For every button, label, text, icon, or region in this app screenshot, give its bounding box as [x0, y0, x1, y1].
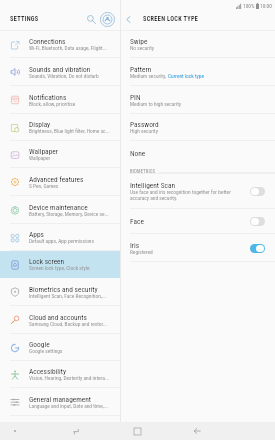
button[interactable]: Back	[183, 422, 211, 440]
staticText: PIN	[130, 93, 141, 102]
staticText: Device maintenance	[29, 203, 88, 212]
staticText: Language and input, Date and time,...	[29, 403, 109, 409]
staticText: Face	[130, 217, 144, 226]
button[interactable]: General management	[0, 388, 120, 416]
staticText: Accessibility	[29, 367, 66, 376]
staticText: Intelligent Scan	[130, 181, 176, 190]
button[interactable]: Menu	[1, 422, 29, 440]
staticText: Display	[29, 120, 51, 129]
button[interactable]: Pattern	[121, 58, 275, 86]
staticText: Battery, Storage, Memory, Device se...	[29, 211, 109, 217]
staticText: SETTINGS	[10, 15, 39, 22]
staticText: Wi-Fi, Bluetooth, Data usage, Flight...	[29, 45, 107, 51]
button[interactable]: PIN	[121, 86, 275, 114]
staticText: Notifications	[29, 93, 67, 102]
button[interactable]: Google	[0, 334, 120, 361]
staticText: Medium to high security	[130, 101, 182, 107]
staticText: Google settings	[29, 348, 63, 354]
button[interactable]: None	[121, 141, 275, 174]
button[interactable]: Home	[123, 422, 151, 440]
staticText: General management	[29, 395, 92, 404]
button[interactable]: Search	[84, 12, 98, 26]
staticText: Samsung Cloud, Backup and restor...	[29, 321, 108, 327]
button[interactable]: Account	[98, 10, 116, 28]
staticText: Pattern	[130, 65, 152, 74]
staticText: Google	[29, 340, 50, 349]
staticText: SCREEN LOCK TYPE	[143, 15, 199, 22]
staticText: None	[130, 149, 146, 158]
button[interactable]: Biometrics and security	[0, 278, 120, 306]
staticText: 10:00	[260, 3, 272, 9]
staticText: Default apps, App permissions	[29, 238, 94, 244]
staticText: Connections	[29, 37, 66, 46]
staticText: Advanced features	[29, 175, 84, 184]
staticText: Biometrics and security	[29, 285, 98, 294]
staticText: Lock screen	[29, 257, 65, 266]
staticText: BIOMETRICS	[130, 169, 156, 174]
staticText: S Pen, Games	[29, 183, 59, 189]
staticText: Iris	[130, 241, 140, 250]
button[interactable]: Wallpaper	[0, 141, 120, 168]
staticText: Password	[130, 120, 159, 129]
button[interactable]: Swipe	[121, 31, 275, 58]
staticText: Swipe	[130, 37, 148, 46]
button[interactable]: Display	[0, 114, 120, 141]
button[interactable]: Apps	[0, 224, 120, 251]
staticText: 100%	[243, 3, 255, 9]
staticText: Brightness, Blue light filter, Home sc..…	[29, 128, 110, 134]
staticText: Medium security,	[130, 73, 168, 79]
staticText: Block, allow, prioritise	[29, 101, 76, 107]
staticText: High security	[130, 128, 158, 134]
staticText: Wallpaper	[29, 147, 58, 156]
button[interactable]: Sounds and vibration	[0, 58, 120, 86]
staticText: Apps	[29, 230, 44, 239]
button[interactable]: Iris	[121, 234, 275, 262]
button[interactable]: Password	[121, 114, 275, 141]
button[interactable]: Recent apps	[62, 422, 90, 440]
button[interactable]: Lock screen	[0, 251, 120, 278]
button[interactable]: Connections	[0, 31, 120, 58]
staticText: Intelligent Scan, Face Recognition,...	[29, 293, 107, 299]
button[interactable]: Face	[121, 209, 275, 234]
staticText: Sounds, Vibration, Do not disturb	[29, 73, 99, 79]
button[interactable]: Device maintenance	[0, 196, 120, 224]
staticText: Sounds and vibration	[29, 65, 91, 74]
staticText: No security	[130, 45, 155, 51]
button[interactable]: Accessibility	[0, 361, 120, 388]
button[interactable]: Intelligent Scan	[121, 174, 275, 209]
staticText: Registered	[130, 249, 153, 255]
button[interactable]: Advanced features	[0, 168, 120, 196]
button[interactable]: Back	[121, 12, 135, 26]
staticText: Cloud and accounts	[29, 313, 87, 322]
staticText: Use face and iris recognition together f…	[130, 189, 231, 201]
staticText: Screen lock type, Clock style	[29, 265, 90, 271]
staticText: Wallpaper	[29, 155, 51, 161]
staticText: Vision, Hearing, Dexterity and intera...	[29, 375, 109, 381]
button[interactable]: Notifications	[0, 86, 120, 114]
button[interactable]: Cloud and accounts	[0, 306, 120, 334]
staticText: Current lock type	[168, 73, 204, 79]
